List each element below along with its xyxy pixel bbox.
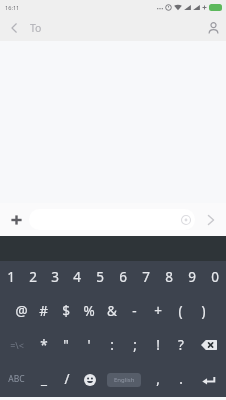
button[interactable]: " <box>55 329 77 363</box>
button[interactable]: - <box>123 295 146 329</box>
button[interactable]: Contacts <box>200 15 226 41</box>
staticText: ) <box>201 302 206 320</box>
staticText: =\< <box>10 339 24 351</box>
staticText: / <box>64 370 70 388</box>
button[interactable]: + <box>146 295 169 329</box>
button[interactable]: ? <box>169 329 192 363</box>
button[interactable]: * <box>33 329 55 363</box>
staticText: * <box>40 336 48 354</box>
button[interactable]: Backspace <box>192 329 226 363</box>
staticText: : <box>110 336 114 354</box>
staticText: 16:11 <box>5 4 20 12</box>
button[interactable]: . <box>169 363 192 397</box>
button[interactable]: Space <box>107 373 141 387</box>
staticText: . <box>179 370 183 388</box>
button[interactable]: Back <box>0 15 28 41</box>
staticText: English <box>114 376 135 384</box>
button[interactable]: 3 <box>44 261 66 295</box>
button[interactable]: $ <box>54 295 77 329</box>
button[interactable]: Send <box>195 203 226 236</box>
staticText: ? <box>178 336 184 354</box>
button[interactable]: 2 <box>22 261 44 295</box>
staticText: 4 <box>73 268 81 286</box>
staticText: 0 <box>211 268 219 286</box>
staticText: # <box>39 302 48 320</box>
button[interactable]: 6 <box>111 261 134 295</box>
button[interactable]: ; <box>123 329 146 363</box>
button[interactable]: 4 <box>66 261 88 295</box>
staticText: _ <box>41 370 47 388</box>
staticText: ! <box>156 336 160 354</box>
staticText: 5 <box>96 268 104 286</box>
button[interactable]: 0 <box>203 261 226 295</box>
staticText: & <box>107 302 117 320</box>
button[interactable]: =\< <box>0 329 33 363</box>
button[interactable]: % <box>77 295 100 329</box>
staticText: ( <box>178 302 183 320</box>
staticText: @ <box>15 302 28 320</box>
button[interactable]: : <box>100 329 123 363</box>
button[interactable]: _ <box>33 363 55 397</box>
button[interactable]: 1 <box>0 261 22 295</box>
staticText: 9 <box>188 268 196 286</box>
button[interactable]: , <box>146 363 169 397</box>
button[interactable]: Emoji <box>78 363 101 397</box>
button[interactable]: ABC <box>0 363 33 397</box>
staticText: 8 <box>165 268 173 286</box>
button[interactable]: # <box>32 295 54 329</box>
staticText: % <box>83 302 95 320</box>
button[interactable]: @ <box>10 295 32 329</box>
staticText: + <box>154 302 162 320</box>
staticText: ABC <box>8 373 25 385</box>
staticText: - <box>132 302 137 320</box>
staticText: 2 <box>29 268 37 286</box>
button[interactable]: 9 <box>180 261 203 295</box>
button[interactable]: & <box>100 295 123 329</box>
staticText: 3 <box>51 268 59 286</box>
staticText: To <box>30 21 42 35</box>
staticText: 6 <box>119 268 127 286</box>
button[interactable]: Add attachment <box>0 203 29 236</box>
staticText: ' <box>87 336 91 354</box>
staticText: 1 <box>7 268 15 286</box>
staticText: 7 <box>142 268 150 286</box>
button[interactable]: Enter <box>192 363 226 397</box>
button[interactable]: ( <box>169 295 192 329</box>
button[interactable]: ) <box>192 295 215 329</box>
button[interactable]: Stickers <box>179 213 192 226</box>
staticText: , <box>156 370 160 388</box>
button[interactable]: ' <box>77 329 100 363</box>
button[interactable]: 8 <box>157 261 180 295</box>
button[interactable]: 5 <box>88 261 111 295</box>
button[interactable]: / <box>55 363 78 397</box>
staticText: $ <box>62 302 70 320</box>
button[interactable]: 7 <box>134 261 157 295</box>
staticText: ; <box>133 336 137 354</box>
button[interactable]: ! <box>146 329 169 363</box>
staticText: " <box>63 336 69 354</box>
